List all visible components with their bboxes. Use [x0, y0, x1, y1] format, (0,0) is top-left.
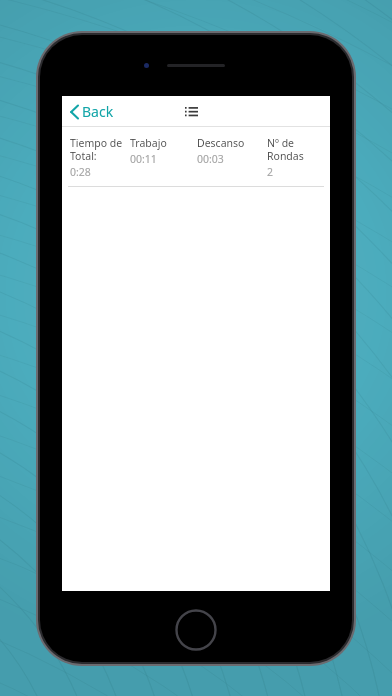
button[interactable]: Tiempo de Total: [70, 136, 130, 179]
staticText: Nº de Rondas [267, 136, 304, 163]
staticText: Trabajo [130, 136, 167, 150]
staticText: Descanso [197, 136, 245, 150]
staticText: 2 [267, 165, 274, 179]
staticText: 00:03 [197, 152, 224, 166]
button[interactable]: Descanso [197, 136, 267, 166]
staticText: 0:28 [70, 165, 91, 179]
button[interactable]: Trabajo [130, 136, 197, 166]
staticText: Back [82, 102, 114, 121]
button[interactable]: Nº de Rondas [267, 136, 330, 179]
staticText: Tiempo de Total: [70, 136, 123, 163]
staticText: 00:11 [130, 152, 157, 166]
button[interactable]: Back [67, 98, 117, 125]
button[interactable]: List [180, 102, 203, 122]
